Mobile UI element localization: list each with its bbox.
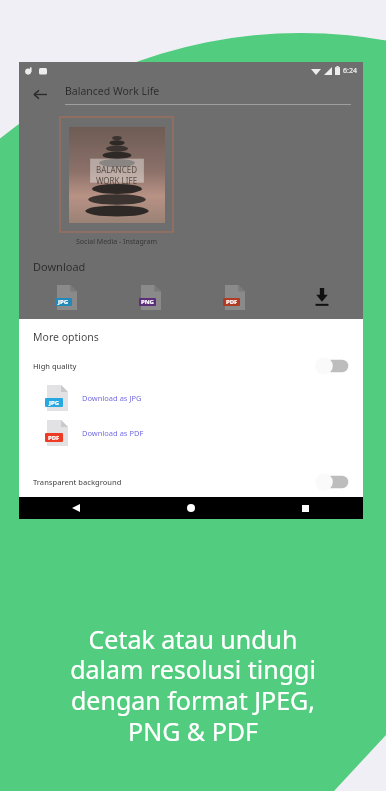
staticText: PDF: [48, 434, 60, 442]
button[interactable]: PDF: [225, 285, 245, 310]
staticText: Download as JPG: [82, 393, 142, 403]
staticText: JPG: [49, 399, 60, 407]
button[interactable]: PDF: [33, 420, 349, 446]
button[interactable]: High quality: [33, 356, 349, 376]
staticText: PNG: [141, 298, 154, 306]
button[interactable]: Download: [309, 284, 335, 310]
staticText: JPG: [58, 298, 69, 306]
button[interactable]: Back: [29, 83, 51, 105]
staticText: Transparent background: [33, 477, 315, 487]
staticText: WORK LIFE: [96, 175, 138, 186]
button[interactable]: Recents: [248, 497, 363, 519]
button[interactable]: BALANCED: [60, 117, 173, 232]
staticText: More options: [33, 330, 99, 344]
staticText: Balanced Work Life: [65, 84, 160, 98]
staticText: Download as PDF: [82, 428, 144, 438]
staticText: High quality: [33, 361, 315, 371]
staticText: BALANCED: [96, 164, 138, 175]
button[interactable]: Back: [19, 497, 133, 519]
button[interactable]: Home: [133, 497, 248, 519]
staticText: Cetak atau unduh dalam resolusi tinggi d…: [70, 622, 316, 749]
button[interactable]: Toggle: [315, 356, 349, 376]
staticText: Download: [33, 259, 86, 274]
button[interactable]: Transparent background: [33, 472, 349, 492]
button[interactable]: PNG: [141, 285, 161, 310]
staticText: Social Media - Instagram: [76, 237, 158, 247]
button[interactable]: JPG: [33, 385, 349, 411]
button[interactable]: Toggle: [315, 472, 349, 492]
button[interactable]: JPG: [57, 285, 77, 310]
staticText: 6:24: [343, 66, 357, 76]
staticText: PDF: [226, 298, 238, 306]
